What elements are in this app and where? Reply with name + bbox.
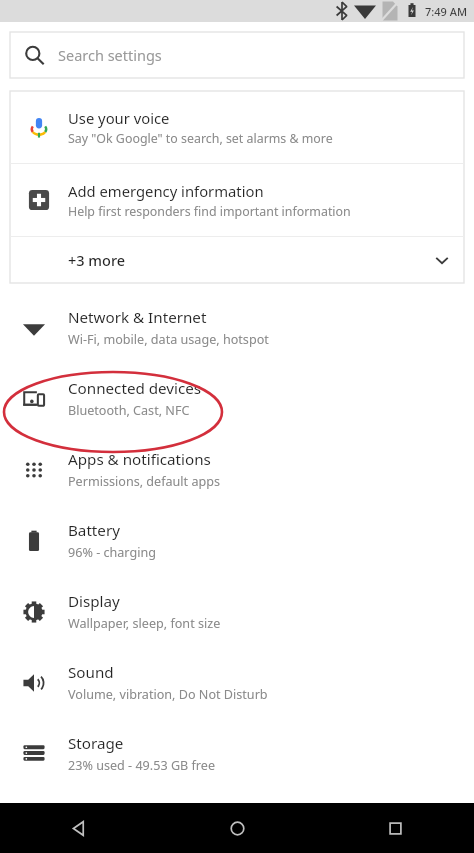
staticText: +3 more <box>68 250 420 270</box>
button[interactable]: Network & Internet <box>0 292 474 363</box>
staticText: Display <box>68 591 120 612</box>
button[interactable]: Add emergency information <box>10 164 464 236</box>
button[interactable]: Search settings <box>10 32 464 78</box>
staticText: Connected devices <box>68 378 202 399</box>
staticText: 23% used - 49.53 GB free <box>68 757 215 774</box>
staticText: Bluetooth, Cast, NFC <box>68 402 190 419</box>
staticText: Say "Ok Google" to search, set alarms & … <box>68 130 333 147</box>
staticText: Storage <box>68 733 124 754</box>
staticText: Search settings <box>58 45 162 65</box>
button[interactable]: Battery <box>0 505 474 576</box>
button[interactable]: Apps & notifications <box>0 434 474 505</box>
staticText: Permissions, default apps <box>68 473 221 490</box>
staticText: 7:49 AM <box>425 4 468 19</box>
button[interactable]: Sound <box>0 647 474 718</box>
staticText: Wi-Fi, mobile, data usage, hotspot <box>68 331 269 348</box>
staticText: Wallpaper, sleep, font size <box>68 615 221 632</box>
staticText: Battery <box>68 520 120 541</box>
staticText: Volume, vibration, Do Not Disturb <box>68 686 268 703</box>
button[interactable]: Home <box>158 803 316 853</box>
staticText: Apps & notifications <box>68 449 211 470</box>
staticText: 96% - charging <box>68 544 156 561</box>
button[interactable]: Back <box>0 803 158 853</box>
button[interactable]: Recent apps <box>316 803 474 853</box>
staticText: Use your voice <box>68 108 170 128</box>
button[interactable]: Storage <box>0 718 474 789</box>
button[interactable]: Connected devices <box>0 363 474 434</box>
button[interactable]: Use your voice <box>10 91 464 163</box>
staticText: Add emergency information <box>68 181 264 201</box>
staticText: Help first responders find important inf… <box>68 203 351 220</box>
button[interactable]: +3 more <box>10 237 464 283</box>
staticText: Sound <box>68 662 114 683</box>
staticText: Network & Internet <box>68 307 207 328</box>
button[interactable]: Display <box>0 576 474 647</box>
